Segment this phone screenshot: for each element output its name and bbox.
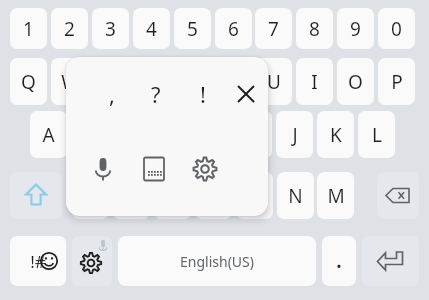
- button[interactable]: ?: [138, 74, 174, 114]
- staticText: .: [336, 248, 342, 274]
- staticText: 0: [391, 16, 402, 42]
- button[interactable]: English(US): [118, 236, 316, 286]
- staticText: Q: [21, 69, 36, 95]
- button[interactable]: .: [322, 236, 356, 286]
- staticText: ,: [109, 79, 115, 109]
- button[interactable]: 0: [378, 8, 415, 49]
- staticText: 7: [268, 16, 279, 42]
- button[interactable]: L: [358, 111, 395, 158]
- button[interactable]: T: [174, 58, 211, 105]
- staticText: English(US): [180, 252, 254, 271]
- staticText: J: [292, 122, 298, 148]
- button[interactable]: R: [133, 58, 170, 105]
- staticText: L: [372, 122, 382, 148]
- staticText: 2: [64, 16, 75, 42]
- button[interactable]: Shift: [10, 172, 62, 219]
- button[interactable]: Keyboard settings: [72, 236, 112, 286]
- button[interactable]: C: [154, 172, 191, 219]
- button[interactable]: 4: [133, 8, 170, 49]
- staticText: U: [267, 69, 281, 95]
- button[interactable]: H: [235, 111, 272, 158]
- button[interactable]: U: [255, 58, 292, 105]
- button[interactable]: 3: [92, 8, 129, 49]
- staticText: !: [200, 79, 206, 109]
- button[interactable]: G: [194, 111, 231, 158]
- button[interactable]: J: [276, 111, 313, 158]
- button[interactable]: Backspace: [377, 172, 419, 219]
- staticText: N: [288, 183, 303, 209]
- staticText: 3: [105, 16, 116, 42]
- button[interactable]: Symbols and emoji: [10, 236, 66, 286]
- button[interactable]: 1: [10, 8, 47, 49]
- staticText: ?: [151, 79, 161, 109]
- staticText: !#: [30, 250, 46, 273]
- button[interactable]: Close: [228, 74, 264, 114]
- staticText: I: [311, 69, 318, 95]
- staticText: P: [391, 69, 403, 95]
- button[interactable]: !: [185, 74, 221, 114]
- button[interactable]: D: [112, 111, 149, 158]
- button[interactable]: 8: [296, 8, 333, 49]
- button[interactable]: O: [337, 58, 374, 105]
- staticText: R: [146, 69, 158, 95]
- staticText: 5: [187, 16, 198, 42]
- button[interactable]: I: [296, 58, 333, 105]
- button[interactable]: Settings: [183, 147, 227, 191]
- button[interactable]: W: [51, 58, 88, 105]
- button[interactable]: 7: [255, 8, 292, 49]
- button[interactable]: Hide keyboard: [132, 147, 176, 191]
- button[interactable]: 2: [51, 8, 88, 49]
- button[interactable]: M: [317, 172, 354, 219]
- staticText: 4: [146, 16, 157, 42]
- button[interactable]: Z: [72, 172, 109, 219]
- button[interactable]: Y: [215, 58, 252, 105]
- staticText: 8: [309, 16, 320, 42]
- staticText: 1: [23, 16, 34, 42]
- button[interactable]: N: [277, 172, 314, 219]
- button[interactable]: E: [92, 58, 129, 105]
- staticText: A: [42, 122, 55, 148]
- button[interactable]: Q: [10, 58, 47, 105]
- staticText: 6: [228, 16, 239, 42]
- button[interactable]: V: [195, 172, 232, 219]
- button[interactable]: Enter: [362, 236, 419, 286]
- staticText: K: [330, 122, 342, 148]
- staticText: Y: [228, 69, 239, 95]
- button[interactable]: X: [113, 172, 150, 219]
- button[interactable]: ,: [94, 74, 130, 114]
- button[interactable]: P: [378, 58, 415, 105]
- button[interactable]: F: [153, 111, 190, 158]
- staticText: W: [61, 69, 79, 95]
- button[interactable]: Voice input: [81, 147, 125, 191]
- button[interactable]: 9: [337, 8, 374, 49]
- button[interactable]: A: [30, 111, 67, 158]
- staticText: 9: [350, 16, 361, 42]
- button[interactable]: 5: [174, 8, 211, 49]
- button[interactable]: 6: [215, 8, 252, 49]
- button[interactable]: B: [236, 172, 273, 219]
- staticText: O: [348, 69, 363, 95]
- staticText: M: [327, 183, 345, 209]
- button[interactable]: K: [317, 111, 354, 158]
